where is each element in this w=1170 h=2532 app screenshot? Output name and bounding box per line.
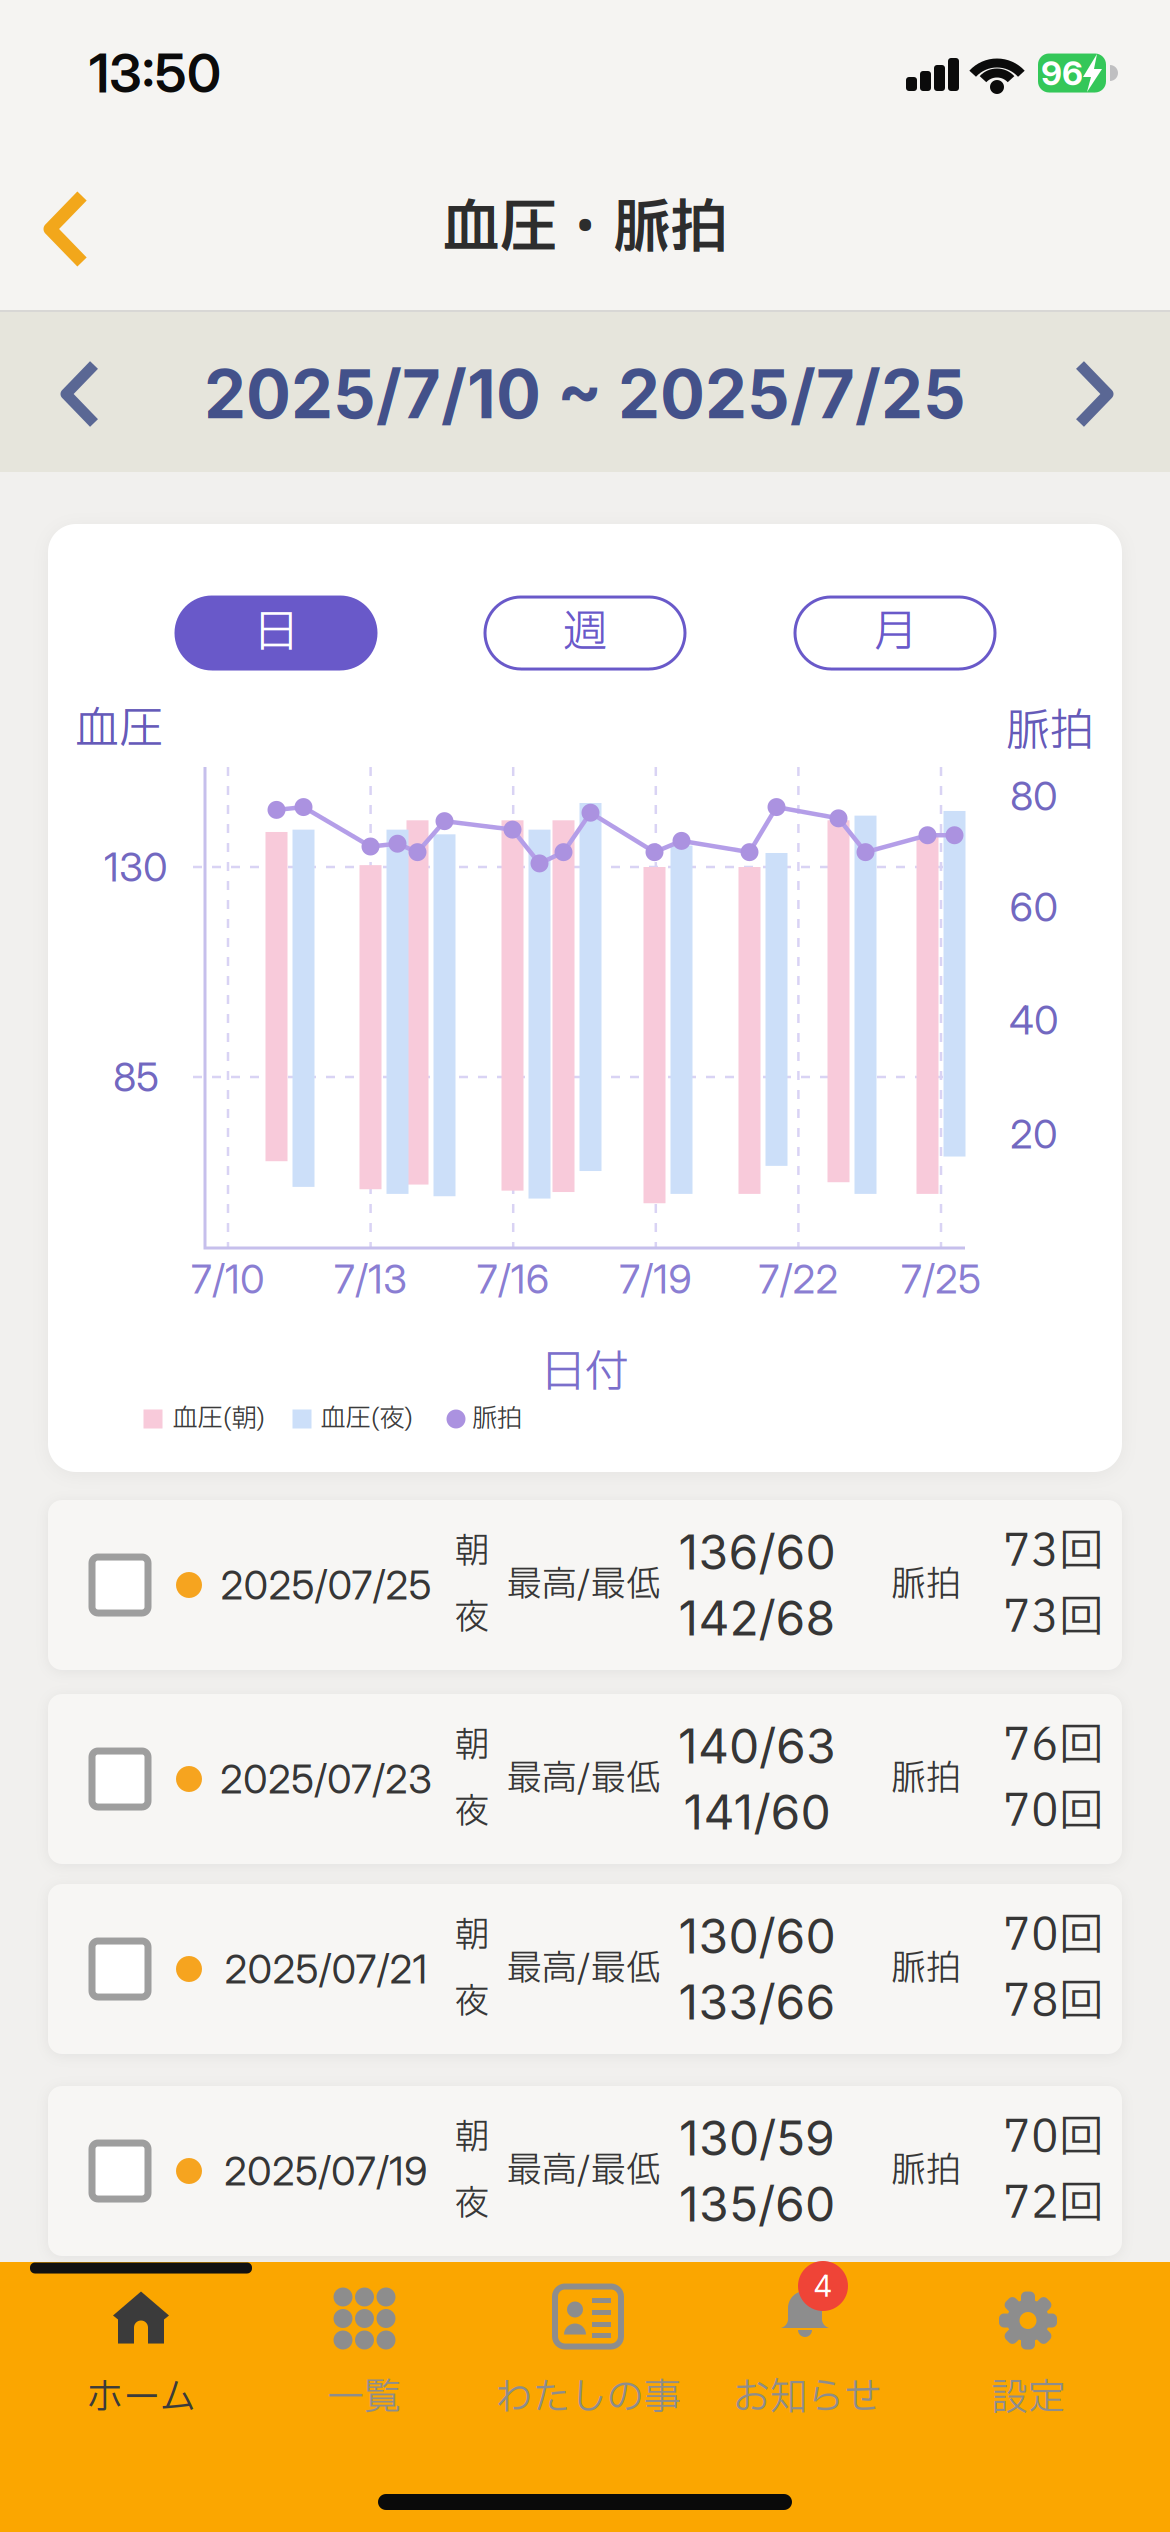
staticText: 20 xyxy=(1010,1110,1058,1158)
staticText: 朝 xyxy=(454,1720,489,1772)
button[interactable]: 週 xyxy=(483,595,686,670)
button[interactable]: 4 xyxy=(733,2284,881,2426)
staticText: 76回 xyxy=(1003,1713,1103,1779)
staticText: 13:50 xyxy=(89,41,221,105)
staticText: 血圧 xyxy=(75,697,163,763)
staticText: 脈拍 xyxy=(891,1559,961,1611)
button[interactable]: 2025/07/19 xyxy=(48,2086,1122,2256)
button[interactable]: 2025/07/23 xyxy=(48,1694,1122,1864)
staticText: 血圧(朝) xyxy=(172,1400,265,1438)
staticText: 血圧・脈拍 xyxy=(442,186,727,272)
staticText: 85 xyxy=(113,1053,159,1101)
staticText: 130 xyxy=(104,843,168,891)
button[interactable]: わたしの事 xyxy=(495,2283,680,2426)
staticText: 夜 xyxy=(454,1976,489,2028)
button[interactable]: 2025/07/21 xyxy=(48,1884,1122,2054)
staticText: 133/66 xyxy=(678,1973,835,2031)
button[interactable]: 2025/07/25 xyxy=(48,1500,1122,1670)
staticText: 朝 xyxy=(454,1910,489,1962)
staticText: 脈拍 xyxy=(472,1400,522,1438)
staticText: 72回 xyxy=(1003,2171,1103,2237)
staticText: 脈拍 xyxy=(1006,699,1094,765)
staticText: 一覧 xyxy=(327,2370,401,2426)
staticText: 7/25 xyxy=(901,1255,981,1303)
staticText: 日付 xyxy=(541,1340,629,1406)
staticText: 7/19 xyxy=(619,1255,692,1303)
staticText: 最高/最低 xyxy=(507,1753,661,1805)
staticText: 130/59 xyxy=(679,2109,835,2167)
staticText: 60 xyxy=(1009,883,1058,931)
button[interactable]: 月 xyxy=(793,595,996,670)
staticText: 朝 xyxy=(454,1526,489,1578)
staticText: 130/60 xyxy=(678,1907,835,1965)
staticText: わたしの事 xyxy=(495,2370,680,2426)
staticText: 70回 xyxy=(1003,1779,1103,1845)
button[interactable]: 次の期間 xyxy=(1050,354,1130,434)
staticText: 7/16 xyxy=(477,1255,550,1303)
staticText: 最高/最低 xyxy=(507,2145,661,2197)
staticText: 朝 xyxy=(454,2112,489,2164)
staticText: 80 xyxy=(1010,772,1058,820)
staticText: 脈拍 xyxy=(891,1943,961,1995)
staticText: 7/13 xyxy=(334,1255,407,1303)
staticText: ホーム xyxy=(86,2370,196,2426)
staticText: 設定 xyxy=(991,2370,1065,2426)
button[interactable]: 設定 xyxy=(991,2289,1065,2426)
staticText: 7/10 xyxy=(191,1255,265,1303)
staticText: 最高/最低 xyxy=(507,1559,661,1611)
staticText: 月 xyxy=(873,600,917,666)
staticText: 2025/07/23 xyxy=(220,1755,432,1803)
staticText: 2025/7/10 ~ 2025/7/25 xyxy=(204,354,966,434)
staticText: 最高/最低 xyxy=(507,1943,661,1995)
staticText: お知らせ xyxy=(733,2370,881,2426)
staticText: 2025/07/25 xyxy=(220,1561,431,1609)
staticText: 73回 xyxy=(1003,1585,1103,1651)
staticText: 135/60 xyxy=(679,2175,835,2233)
staticText: 夜 xyxy=(454,1592,489,1644)
button[interactable]: 日 xyxy=(174,595,377,670)
button[interactable]: ホーム xyxy=(86,2289,196,2426)
staticText: 73回 xyxy=(1003,1519,1103,1585)
staticText: 142/68 xyxy=(678,1589,835,1647)
staticText: 夜 xyxy=(454,1786,489,1838)
staticText: 週 xyxy=(563,600,607,666)
staticText: 脈拍 xyxy=(891,2145,961,2197)
staticText: 2025/07/21 xyxy=(224,1945,427,1993)
button[interactable]: 戻る xyxy=(30,184,102,274)
staticText: 141/60 xyxy=(683,1783,830,1841)
staticText: 70回 xyxy=(1003,1903,1103,1969)
staticText: 78回 xyxy=(1003,1969,1103,2035)
staticText: 96 xyxy=(1041,53,1083,93)
button[interactable]: 前の期間 xyxy=(44,354,124,434)
staticText: 2025/07/19 xyxy=(224,2147,428,2195)
staticText: 7/22 xyxy=(758,1255,838,1303)
staticText: 140/63 xyxy=(678,1717,836,1775)
button[interactable]: 一覧 xyxy=(327,2290,401,2426)
staticText: 日 xyxy=(254,600,298,666)
staticText: 136/60 xyxy=(678,1523,835,1581)
staticText: 40 xyxy=(1009,996,1059,1044)
staticText: 4 xyxy=(813,2268,832,2304)
staticText: 脈拍 xyxy=(891,1753,961,1805)
staticText: 70回 xyxy=(1003,2105,1103,2171)
staticText: 血圧(夜) xyxy=(320,1400,413,1438)
staticText: 夜 xyxy=(454,2178,489,2230)
